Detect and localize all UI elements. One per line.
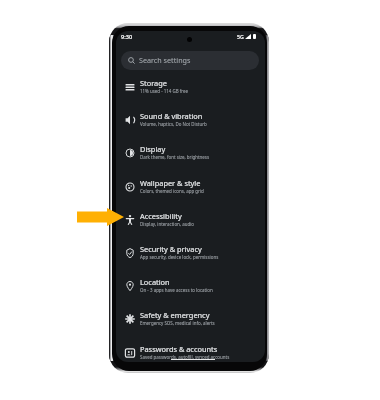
button[interactable]: Safety & emergency	[116, 305, 265, 338]
button[interactable]: Sound & vibration	[116, 106, 265, 139]
staticText: Display, interaction, audio	[140, 221, 194, 227]
button[interactable]: Security & privacy	[116, 239, 265, 272]
button[interactable]: Search settings	[121, 51, 259, 70]
staticText: 5G	[237, 33, 244, 40]
staticText: Saved passwords, autofill, synced accoun…	[140, 354, 230, 360]
button[interactable]: Storage	[116, 73, 265, 106]
staticText: App security, device lock, permissions	[140, 254, 219, 260]
button[interactable]: Wallpaper & style	[116, 173, 265, 206]
staticText: Security & privacy	[140, 244, 202, 254]
staticText: Sound & vibration	[140, 111, 203, 121]
staticText: Search settings	[139, 55, 191, 65]
staticText: Accessibility	[140, 211, 182, 221]
staticText: Colors, themed icons, app grid	[140, 188, 204, 194]
button[interactable]: Accessibility	[116, 206, 265, 239]
staticText: Storage	[140, 78, 167, 88]
staticText: 11% used - 114 GB free	[140, 88, 189, 94]
button[interactable]: Display	[116, 139, 265, 172]
staticText: Emergency SOS, medical info, alerts	[140, 320, 215, 326]
staticText: Passwords & accounts	[140, 344, 218, 354]
staticText: Volume, haptics, Do Not Disturb	[140, 121, 207, 127]
staticText: Safety & emergency	[140, 310, 210, 320]
staticText: Wallpaper & style	[140, 178, 201, 188]
staticText: Display	[140, 144, 166, 154]
staticText: Location	[140, 277, 170, 287]
staticText: Dark theme, font size, brightness	[140, 154, 210, 160]
staticText: 9:30	[121, 33, 133, 41]
button[interactable]: Passwords & accounts	[116, 339, 265, 362]
button[interactable]: Location	[116, 272, 265, 305]
staticText: On - 3 apps have access to location	[140, 287, 213, 293]
